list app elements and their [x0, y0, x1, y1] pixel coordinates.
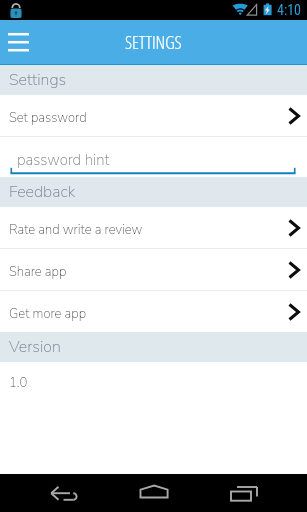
- staticText: Settings: [9, 69, 67, 91]
- staticText: Get more app: [9, 305, 87, 323]
- staticText: Rate and write a review: [9, 221, 143, 239]
- button[interactable]: Back: [39, 474, 87, 512]
- staticText: Feedback: [9, 181, 76, 203]
- staticText: Set password: [9, 109, 87, 127]
- button[interactable]: Open navigation drawer: [0, 20, 37, 65]
- staticText: 1.0: [9, 374, 28, 392]
- button[interactable]: Get more app: [0, 291, 307, 332]
- button[interactable]: Set password: [0, 95, 307, 136]
- button[interactable]: Recent apps: [220, 474, 268, 512]
- staticText: SETTINGS: [125, 30, 182, 55]
- staticText: 4:10: [277, 2, 302, 18]
- button[interactable]: Home: [130, 474, 178, 512]
- staticText: Share app: [9, 263, 67, 281]
- button[interactable]: Rate and write a review: [0, 207, 307, 248]
- button[interactable]: Share app: [0, 249, 307, 290]
- staticText: Version: [9, 336, 61, 358]
- staticText: password hint: [17, 150, 110, 170]
